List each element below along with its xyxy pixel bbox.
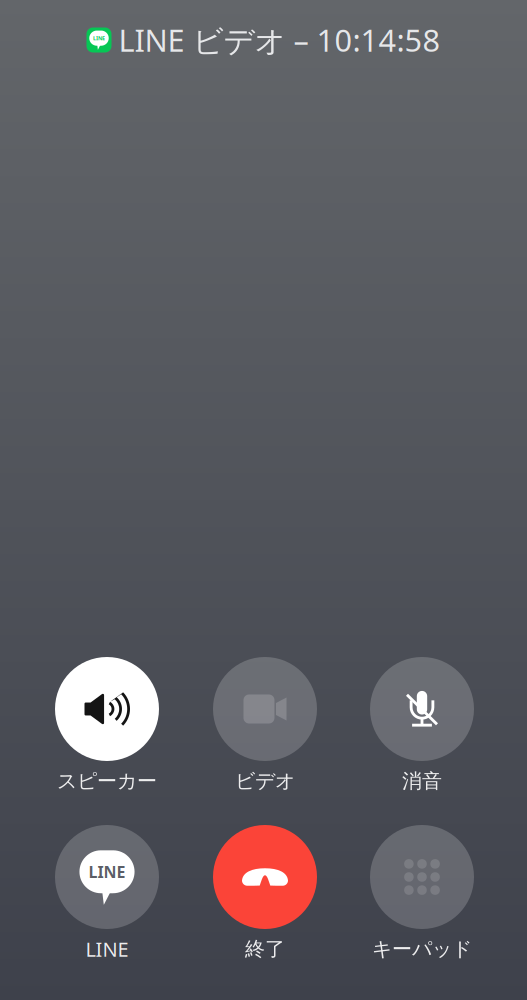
button[interactable]: 終了 xyxy=(189,825,341,971)
button[interactable]: LINE xyxy=(31,825,183,971)
staticText: ビデオ xyxy=(235,769,295,793)
staticText: キーパッド xyxy=(372,937,472,961)
staticText: LINE xyxy=(85,936,128,962)
staticText: LINE ビデオ – 10:14:58 xyxy=(118,20,440,60)
button[interactable]: キーパッド xyxy=(346,825,498,971)
staticText: LINE xyxy=(88,861,125,882)
staticText: スピーカー xyxy=(57,769,157,793)
staticText: 終了 xyxy=(245,937,285,961)
button[interactable]: ビデオ xyxy=(189,657,341,803)
button[interactable]: スピーカー xyxy=(31,657,183,803)
staticText: LINE xyxy=(93,35,105,42)
staticText: 消音 xyxy=(402,769,442,793)
button[interactable]: 消音 xyxy=(346,657,498,803)
